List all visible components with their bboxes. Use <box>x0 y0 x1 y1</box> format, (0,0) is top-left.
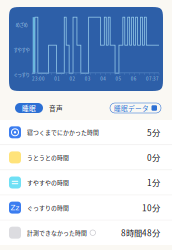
staticText: 0分 <box>147 151 160 163</box>
staticText: 8時間48分 <box>121 227 160 239</box>
staticText: うとうとの時間 <box>27 153 69 162</box>
staticText: 03 <box>85 75 91 82</box>
staticText: 音声 <box>49 103 63 113</box>
button[interactable]: 睡眠 <box>15 103 43 113</box>
button[interactable]: Zz <box>0 195 172 220</box>
staticText: 04 <box>100 75 106 82</box>
staticText: 睡眠データ <box>114 103 149 113</box>
staticText: 計測できなかった時間 <box>27 228 87 237</box>
staticText: すやすや <box>13 46 29 53</box>
staticText: すやすやの時間 <box>27 178 69 187</box>
staticText: 寝つくまでにかかった時間 <box>27 128 99 137</box>
button[interactable]: すやすやの時間 <box>0 170 172 195</box>
button[interactable]: 睡眠データ <box>110 103 161 113</box>
staticText: 06 <box>131 75 137 82</box>
staticText: 05 <box>115 75 121 82</box>
staticText: Zz <box>10 203 19 212</box>
staticText: 10分 <box>142 202 160 214</box>
staticText: 1分 <box>147 176 160 188</box>
staticText: 01 <box>54 75 60 82</box>
staticText: ぐっすり <box>13 71 29 77</box>
button[interactable]: 音声 <box>43 103 69 113</box>
button[interactable]: うとうとの時間 <box>0 145 172 170</box>
button[interactable]: 寝つくまでにかかった時間 <box>0 120 172 145</box>
staticText: めざめ <box>15 21 27 28</box>
staticText: ぐっすりの時間 <box>27 203 69 212</box>
staticText: 5分 <box>147 126 160 138</box>
staticText: 07:37 <box>146 75 159 82</box>
staticText: 02 <box>70 75 76 82</box>
staticText: 睡眠 <box>22 103 36 113</box>
staticText: 23:00 <box>32 75 45 82</box>
button[interactable]: 計測できなかった時間 <box>0 220 172 245</box>
